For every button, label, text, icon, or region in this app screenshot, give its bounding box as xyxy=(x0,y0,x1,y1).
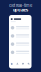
staticText: Get real-time xyxy=(9,3,32,8)
staticText: updates xyxy=(13,8,28,12)
